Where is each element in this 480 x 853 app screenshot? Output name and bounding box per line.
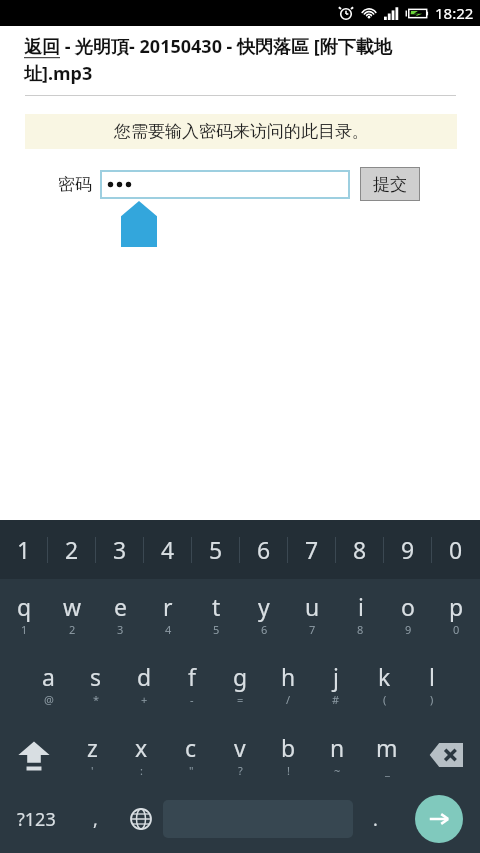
button[interactable]: 2: [48, 520, 96, 579]
button[interactable]: Shift: [0, 719, 68, 791]
button[interactable]: i: [336, 579, 384, 649]
button[interactable]: g: [216, 649, 264, 719]
staticText: 0: [449, 534, 463, 565]
staticText: u: [305, 591, 320, 622]
staticText: i: [358, 591, 364, 622]
staticText: ?123: [17, 807, 56, 832]
button[interactable]: w: [48, 579, 96, 649]
staticText: p: [449, 591, 464, 622]
button[interactable]: h: [264, 649, 312, 719]
button[interactable]: m: [362, 719, 411, 791]
staticText: 1: [21, 622, 28, 637]
button[interactable]: 9: [384, 520, 432, 579]
button[interactable]: 4: [144, 520, 192, 579]
button[interactable]: s: [72, 649, 120, 719]
staticText: 您需要输入密码来访问的此目录。: [114, 121, 369, 142]
button[interactable]: k: [360, 649, 408, 719]
staticText: j: [333, 661, 339, 692]
staticText: r: [163, 591, 173, 622]
button[interactable]: d: [120, 649, 168, 719]
button[interactable]: z: [68, 719, 117, 791]
button[interactable]: Change language: [118, 791, 163, 847]
button[interactable]: a: [24, 649, 72, 719]
button[interactable]: 返回 - 光明頂- 20150430 - 快閃落區 [附下載地址].mp3: [24, 34, 456, 85]
staticText: 8: [357, 622, 364, 637]
button[interactable]: n: [313, 719, 362, 791]
staticText: +: [141, 692, 148, 707]
staticText: h: [281, 661, 296, 692]
staticText: 6: [261, 622, 268, 637]
staticText: ': [91, 763, 94, 778]
staticText: ": [189, 763, 194, 778]
button[interactable]: r: [144, 579, 192, 649]
button[interactable]: 6: [240, 520, 288, 579]
button[interactable]: .: [353, 791, 398, 847]
button[interactable]: l: [408, 649, 456, 719]
button[interactable]: b: [264, 719, 313, 791]
button[interactable]: u: [288, 579, 336, 649]
staticText: 2: [65, 534, 79, 565]
staticText: !: [287, 763, 290, 778]
button[interactable]: c: [166, 719, 215, 791]
staticText: f: [188, 661, 196, 692]
staticText: ,: [93, 807, 98, 832]
staticText: /: [286, 692, 291, 707]
staticText: 7: [305, 534, 319, 565]
staticText: 7: [309, 622, 316, 637]
staticText: 4: [165, 622, 172, 637]
staticText: q: [17, 591, 32, 622]
button[interactable]: t: [192, 579, 240, 649]
button[interactable]: [100, 170, 350, 199]
button[interactable]: 1: [0, 520, 48, 579]
staticText: ?: [238, 763, 243, 778]
staticText: 8: [353, 534, 367, 565]
staticText: 6: [257, 534, 271, 565]
button[interactable]: ,: [73, 791, 118, 847]
button[interactable]: Enter: [415, 795, 463, 843]
button[interactable]: p: [432, 579, 480, 649]
staticText: 密码: [58, 174, 92, 195]
staticText: @: [44, 692, 54, 707]
button[interactable]: 8: [336, 520, 384, 579]
staticText: 5: [209, 534, 223, 565]
staticText: l: [429, 661, 435, 692]
button[interactable]: 0: [432, 520, 480, 579]
staticText: e: [114, 591, 127, 622]
button[interactable]: 7: [288, 520, 336, 579]
staticText: *: [93, 692, 100, 707]
staticText: m: [376, 732, 398, 763]
staticText: ~: [334, 763, 341, 778]
button[interactable]: v: [215, 719, 264, 791]
staticText: 5: [213, 622, 220, 637]
button[interactable]: Backspace: [411, 719, 480, 791]
staticText: :: [140, 763, 143, 778]
staticText: b: [281, 732, 296, 763]
staticText: -: [190, 692, 194, 707]
button[interactable]: j: [312, 649, 360, 719]
staticText: x: [135, 732, 148, 763]
button[interactable]: f: [168, 649, 216, 719]
staticText: =: [237, 692, 244, 707]
button[interactable]: x: [117, 719, 166, 791]
button[interactable]: o: [384, 579, 432, 649]
button[interactable]: 提交: [360, 167, 420, 201]
button[interactable]: y: [240, 579, 288, 649]
button[interactable]: q: [0, 579, 48, 649]
staticText: 4: [161, 534, 175, 565]
staticText: 3: [117, 622, 124, 637]
staticText: .: [373, 807, 378, 832]
button[interactable]: 5: [192, 520, 240, 579]
button[interactable]: ?123: [0, 791, 73, 847]
button[interactable]: 3: [96, 520, 144, 579]
staticText: s: [90, 661, 102, 692]
staticText: 9: [405, 622, 412, 637]
staticText: 2: [69, 622, 76, 637]
button[interactable]: e: [96, 579, 144, 649]
staticText: 1: [17, 534, 31, 565]
staticText: z: [87, 732, 98, 763]
staticText: d: [137, 661, 152, 692]
staticText: t: [212, 591, 221, 622]
staticText: v: [234, 732, 246, 763]
